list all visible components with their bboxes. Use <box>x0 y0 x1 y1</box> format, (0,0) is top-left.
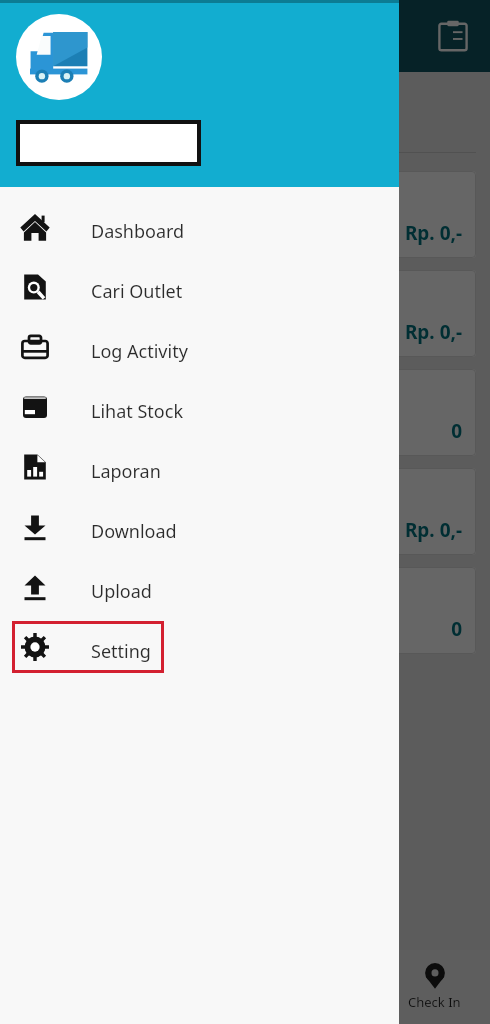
staticText: 22/09/2022 10:48 <box>14 117 161 142</box>
staticText: Rp. 0,- <box>28 220 462 246</box>
button[interactable] <box>12 381 164 433</box>
staticText: Log Activity <box>91 339 188 364</box>
button[interactable] <box>12 261 164 313</box>
staticText: Total Penjualan <box>28 183 151 206</box>
staticText: Total Pembayaran <box>28 282 172 305</box>
button[interactable]: Check In <box>400 955 469 1019</box>
staticText: Total Transaksi <box>28 579 146 602</box>
staticText: Upload <box>91 579 152 604</box>
staticText: Dashboard <box>91 219 185 244</box>
staticText: Download <box>91 519 177 544</box>
staticText: Check In <box>408 993 461 1011</box>
button[interactable] <box>12 621 164 673</box>
staticText: Total Tagihan <box>28 480 135 503</box>
button[interactable]: Total Tagihan <box>14 468 476 555</box>
staticText: Rp. 0,- <box>28 517 462 543</box>
button[interactable]: Total Pembayaran <box>14 270 476 357</box>
staticText: Lihat Stock <box>91 399 183 424</box>
staticText: 0 <box>28 418 462 444</box>
button[interactable]: Tasks <box>436 19 470 53</box>
staticText: Terakhir Sync <box>14 84 127 109</box>
staticText: Rp. 0,- <box>28 319 462 345</box>
staticText: Laporan <box>91 459 161 484</box>
button[interactable]: Total Transaksi <box>14 567 476 654</box>
button[interactable] <box>12 561 164 613</box>
button[interactable] <box>12 501 164 553</box>
button[interactable] <box>12 441 164 493</box>
button[interactable] <box>12 321 164 373</box>
button[interactable]: Total Penjualan <box>14 171 476 258</box>
staticText: 0 <box>28 616 462 642</box>
staticText: Total Check In <box>28 381 140 404</box>
staticText: Setting <box>91 639 151 664</box>
staticText: Cari Outlet <box>91 279 183 304</box>
button[interactable]: Total Check In <box>14 369 476 456</box>
button[interactable] <box>12 201 164 253</box>
